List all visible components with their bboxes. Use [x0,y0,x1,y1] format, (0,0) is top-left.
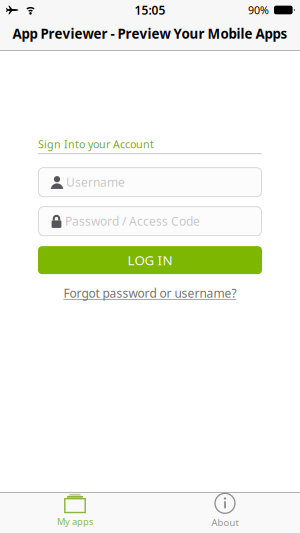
staticText: About [211,516,238,529]
staticText: Forgot password or username? [63,285,236,301]
staticText: Username [66,174,125,190]
staticText: Sign Into your Account [38,137,154,151]
staticText: My apps [57,515,93,528]
button[interactable]: About [150,493,300,533]
staticText: 90% [248,3,269,17]
button[interactable]: LOG IN [38,246,262,274]
button[interactable]: Forgot password or username? [63,285,236,301]
staticText: 15:05 [134,2,165,18]
staticText: LOG IN [127,251,172,269]
button[interactable]: My apps [0,493,150,533]
button[interactable]: Username [38,167,262,197]
staticText: App Previewer - Preview Your Mobile Apps [12,25,287,42]
button[interactable]: Password / Access Code [38,206,262,236]
staticText: Password / Access Code [65,213,200,229]
